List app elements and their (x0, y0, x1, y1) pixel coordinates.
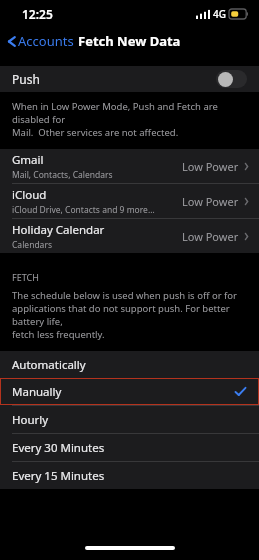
staticText: Low Power (182, 194, 239, 209)
staticText: Gmail (12, 152, 44, 168)
button[interactable]: Hourly (0, 406, 259, 433)
staticText: 4G (213, 7, 226, 21)
button[interactable]: Every 30 Minutes (0, 434, 259, 461)
staticText: Push (12, 71, 40, 87)
button[interactable]: Manually (0, 378, 259, 405)
staticText: iCloud Drive, Contacts and 9 more… (12, 204, 155, 216)
staticText: Fetch New Data (78, 32, 181, 50)
button[interactable]: Holiday Calendar (0, 219, 259, 253)
staticText: Automatically (12, 357, 86, 373)
button[interactable]: Push (0, 66, 259, 92)
staticText: Low Power (182, 229, 239, 244)
staticText: Hourly (12, 412, 49, 428)
button[interactable]: Accounts (0, 29, 82, 53)
staticText: iCloud (12, 187, 47, 203)
button[interactable]: Automatically (0, 351, 259, 378)
staticText: Every 30 Minutes (12, 440, 105, 456)
staticText: Holiday Calendar (12, 222, 105, 238)
button[interactable]: iCloud (0, 184, 259, 219)
staticText: Low Power (182, 159, 239, 174)
staticText: 12:25 (22, 6, 53, 22)
button[interactable]: Every 15 Minutes (0, 462, 259, 489)
staticText: Accounts (18, 32, 74, 50)
staticText: When in Low Power Mode, Push and Fetch a… (12, 100, 247, 139)
staticText: Manually (12, 384, 62, 400)
staticText: FETCH (12, 271, 39, 283)
staticText: Every 15 Minutes (12, 468, 105, 484)
staticText: Calendars (12, 239, 52, 251)
staticText: The schedule below is used when push is … (12, 289, 247, 341)
staticText: Mail, Contacts, Calendars (12, 169, 113, 181)
button[interactable]: Gmail (0, 149, 259, 184)
